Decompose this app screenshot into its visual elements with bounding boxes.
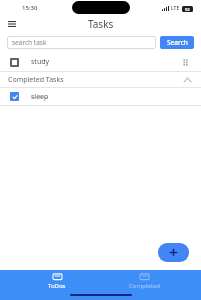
button[interactable]: Completed xyxy=(114,272,174,291)
staticText: sleep xyxy=(31,92,49,102)
staticText: study xyxy=(31,57,50,67)
button[interactable]: Menu xyxy=(5,17,19,31)
staticText: 53 xyxy=(185,7,190,12)
staticText: Search xyxy=(167,38,188,47)
button[interactable]: Mark sleep incomplete xyxy=(10,92,19,101)
button[interactable]: Mark study complete xyxy=(0,53,201,71)
button[interactable]: ToDos xyxy=(27,272,87,291)
button[interactable]: Mark study complete xyxy=(10,58,19,67)
button[interactable]: Add task xyxy=(158,243,189,262)
button[interactable]: Completed Tasks xyxy=(0,72,201,87)
staticText: search task xyxy=(12,38,47,47)
staticText: ToDos xyxy=(48,282,66,290)
staticText: Completed xyxy=(129,282,160,290)
button[interactable]: Mark sleep incomplete xyxy=(0,88,201,105)
button[interactable]: Reorder study xyxy=(179,56,191,68)
staticText: 15:30 xyxy=(22,4,38,12)
staticText: LTE xyxy=(171,5,180,12)
staticText: Completed Tasks xyxy=(8,75,64,85)
button[interactable]: Search xyxy=(160,36,194,49)
button[interactable]: search task xyxy=(7,36,156,49)
other: Collapse completed tasks xyxy=(181,74,193,86)
staticText: Tasks xyxy=(88,17,114,31)
